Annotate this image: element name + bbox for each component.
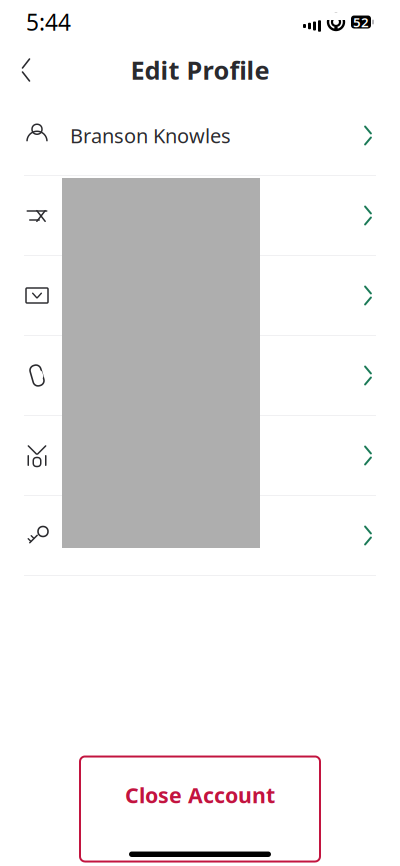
staticText: 5:44	[26, 7, 71, 37]
button[interactable]: Address	[0, 416, 400, 495]
button[interactable]: Password	[0, 496, 400, 575]
button[interactable]: Phone	[0, 336, 400, 415]
staticText: Close Account	[125, 781, 275, 809]
staticText: 52	[353, 13, 369, 31]
button[interactable]: Name, Branson Knowles	[0, 96, 400, 175]
button[interactable]: Close Account	[80, 756, 320, 861]
button[interactable]: Email	[0, 256, 400, 335]
staticText: Edit Profile	[130, 53, 269, 87]
staticText: Branson Knowles	[70, 122, 231, 149]
button[interactable]: Back	[6, 50, 46, 90]
button[interactable]: Username	[0, 176, 400, 255]
